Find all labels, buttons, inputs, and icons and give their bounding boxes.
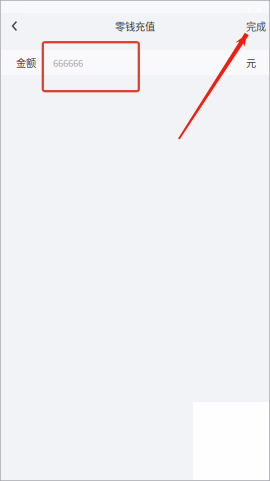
button[interactable]: 完成 — [246, 13, 270, 39]
staticText: 零钱充值 — [115, 19, 155, 33]
staticText: 666666 — [53, 56, 83, 69]
staticText: 完成 — [246, 19, 266, 33]
staticText: 金额 — [16, 55, 36, 70]
staticText: 元 — [246, 55, 256, 70]
button[interactable]: 666666 — [36, 50, 246, 75]
button[interactable]: Back — [0, 13, 29, 39]
